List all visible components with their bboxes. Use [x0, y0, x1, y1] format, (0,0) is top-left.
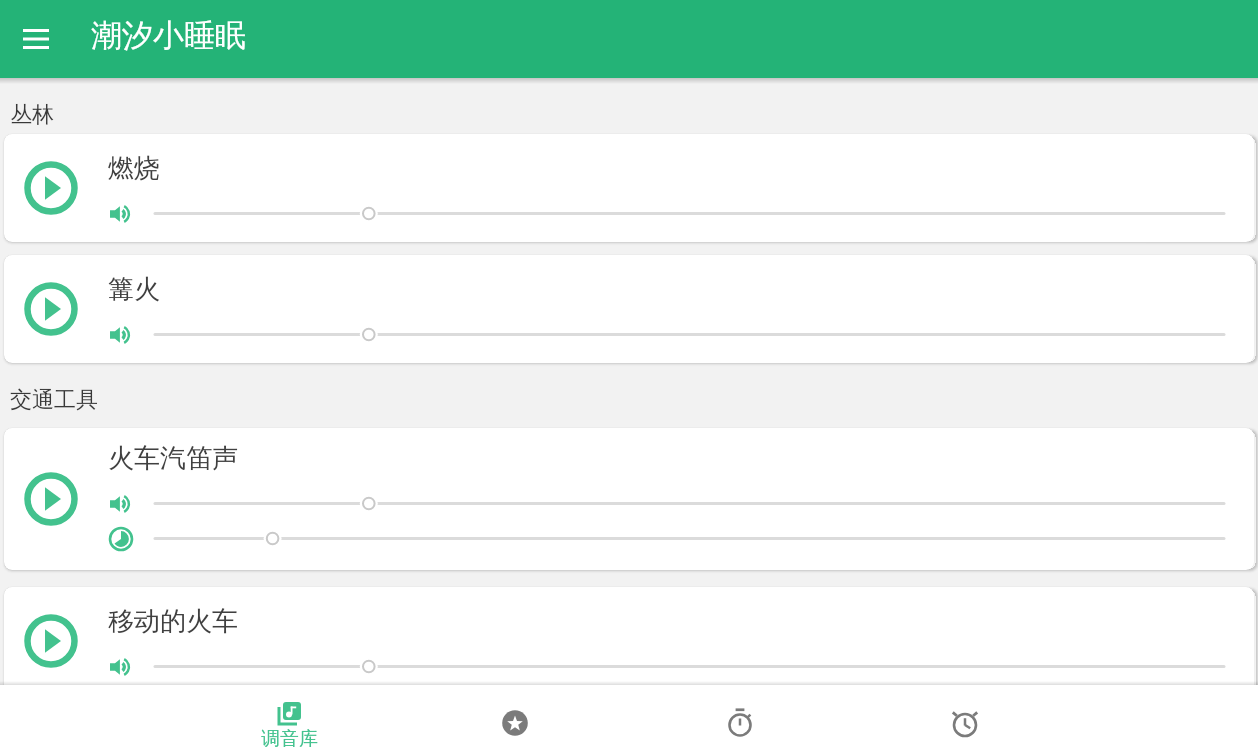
button[interactable]	[155, 486, 1224, 521]
button[interactable]	[108, 491, 134, 517]
button[interactable]	[108, 654, 134, 680]
staticText: 火车汽笛声	[108, 442, 238, 475]
button[interactable]	[24, 282, 78, 336]
button[interactable]	[24, 614, 78, 668]
staticText: 移动的火车	[108, 605, 238, 638]
button[interactable]	[155, 521, 1224, 556]
staticText: 篝火	[108, 273, 160, 306]
button[interactable]	[155, 196, 1224, 231]
button[interactable]	[402, 685, 627, 747]
button[interactable]	[108, 322, 134, 348]
button[interactable]: 移动的火车	[4, 587, 1254, 695]
button[interactable]	[108, 201, 134, 227]
staticText: 燃烧	[108, 152, 160, 185]
button[interactable]	[108, 526, 134, 552]
button[interactable]	[852, 685, 1077, 747]
staticText: 丛林	[10, 101, 54, 129]
button[interactable]	[24, 472, 78, 526]
button[interactable]	[16, 19, 56, 59]
button[interactable]: 火车汽笛声	[4, 428, 1254, 570]
staticText: 交通工具	[10, 386, 98, 414]
staticText: 调音库	[261, 727, 318, 747]
button[interactable]: 篝火	[4, 255, 1254, 363]
staticText: 潮汐小睡眠	[91, 16, 246, 55]
button[interactable]	[155, 649, 1224, 684]
button[interactable]: 燃烧	[4, 134, 1254, 242]
button[interactable]	[155, 317, 1224, 352]
button[interactable]	[627, 685, 852, 747]
button[interactable]	[24, 161, 78, 215]
button[interactable]: 调音库	[177, 685, 402, 747]
